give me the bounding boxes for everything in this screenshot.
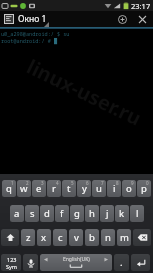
other: Backspace (133, 229, 151, 246)
staticText: 5 (71, 180, 74, 186)
button[interactable]: t (62, 180, 76, 197)
staticText: k (119, 207, 125, 220)
button[interactable]: p (137, 180, 151, 197)
button[interactable]: b (85, 229, 99, 246)
staticText: 7 (101, 180, 104, 186)
staticText: 9 (131, 180, 134, 186)
staticText: q (6, 182, 12, 195)
button[interactable]: i (107, 180, 121, 197)
staticText: s (30, 207, 35, 220)
button[interactable]: z (21, 229, 35, 246)
button[interactable]: y (77, 180, 91, 197)
staticText: Sym (6, 263, 17, 270)
staticText: n (105, 231, 111, 244)
staticText: 0 (146, 180, 149, 186)
button[interactable]: d (40, 205, 54, 222)
button[interactable]: l (130, 205, 144, 222)
button[interactable]: s (25, 205, 39, 222)
button[interactable]: n (101, 229, 115, 246)
staticText: 1 (11, 180, 14, 186)
button[interactable]: 123 (1, 254, 21, 271)
staticText: g (74, 207, 80, 220)
staticText: w (20, 182, 28, 195)
button[interactable]: q (2, 180, 16, 197)
other: Enter (131, 254, 150, 271)
staticText: . (120, 256, 123, 269)
staticText: 123 (7, 256, 17, 263)
staticText: 2 (26, 180, 29, 186)
staticText: 23:17 (131, 1, 151, 11)
staticText: u (96, 182, 102, 195)
button[interactable]: a (10, 205, 24, 222)
staticText: l (136, 207, 139, 220)
staticText: c (58, 231, 63, 244)
button[interactable]: e (32, 180, 46, 197)
staticText: 6 (86, 180, 89, 186)
button[interactable] (133, 229, 151, 246)
button[interactable]: f (55, 205, 69, 222)
button[interactable]: o (122, 180, 136, 197)
button[interactable]: . (114, 254, 129, 271)
button[interactable]: g (70, 205, 84, 222)
staticText: 3 (41, 180, 44, 186)
staticText: x (41, 231, 47, 244)
staticText: r (52, 182, 56, 195)
button[interactable]: h (85, 205, 99, 222)
staticText: v (74, 231, 79, 244)
button[interactable]: c (53, 229, 67, 246)
button[interactable]: j (100, 205, 114, 222)
staticText: English(UK) (63, 256, 90, 263)
button[interactable]: x (37, 229, 51, 246)
staticText: linux-user.ru (22, 53, 147, 132)
button[interactable]: English(UK) (40, 254, 112, 271)
staticText: a (14, 207, 20, 220)
button[interactable]: Close window (134, 11, 150, 27)
staticText: j (106, 207, 109, 220)
staticText: p (141, 182, 147, 195)
button[interactable]: m (117, 229, 131, 246)
button[interactable] (131, 254, 150, 271)
button[interactable]: v (69, 229, 83, 246)
staticText: o (126, 182, 132, 195)
staticText: t (67, 182, 71, 195)
staticText: Окно 1 (18, 13, 47, 25)
staticText: 4 (56, 180, 59, 186)
staticText: m (120, 231, 129, 244)
staticText: 8 (116, 180, 119, 186)
staticText: u0_a298@android:/ $ su (1, 30, 70, 37)
button[interactable] (23, 254, 38, 271)
other: Shift (1, 229, 19, 246)
button[interactable]: w (17, 180, 31, 197)
button[interactable]: k (115, 205, 129, 222)
button[interactable] (1, 229, 19, 246)
staticText: y (82, 182, 87, 195)
staticText: e (36, 182, 42, 195)
other: Voice input (23, 254, 38, 271)
staticText: d (44, 207, 50, 220)
staticText: f (60, 207, 64, 220)
staticText: i (113, 182, 116, 195)
staticText: z (26, 231, 31, 244)
button[interactable]: u (92, 180, 106, 197)
staticText: b (89, 231, 95, 244)
button[interactable]: New window (114, 11, 130, 27)
staticText: h (89, 207, 95, 220)
button[interactable]: r (47, 180, 61, 197)
staticText: root@android:/ # █ (1, 37, 58, 44)
